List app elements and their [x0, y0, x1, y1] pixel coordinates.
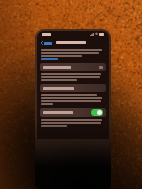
button[interactable]	[40, 63, 106, 71]
button[interactable]: Optimised charging on	[40, 108, 106, 117]
button[interactable]: Back	[40, 40, 53, 46]
button[interactable]	[40, 84, 106, 92]
button[interactable]: Optimised charging on	[91, 109, 103, 116]
